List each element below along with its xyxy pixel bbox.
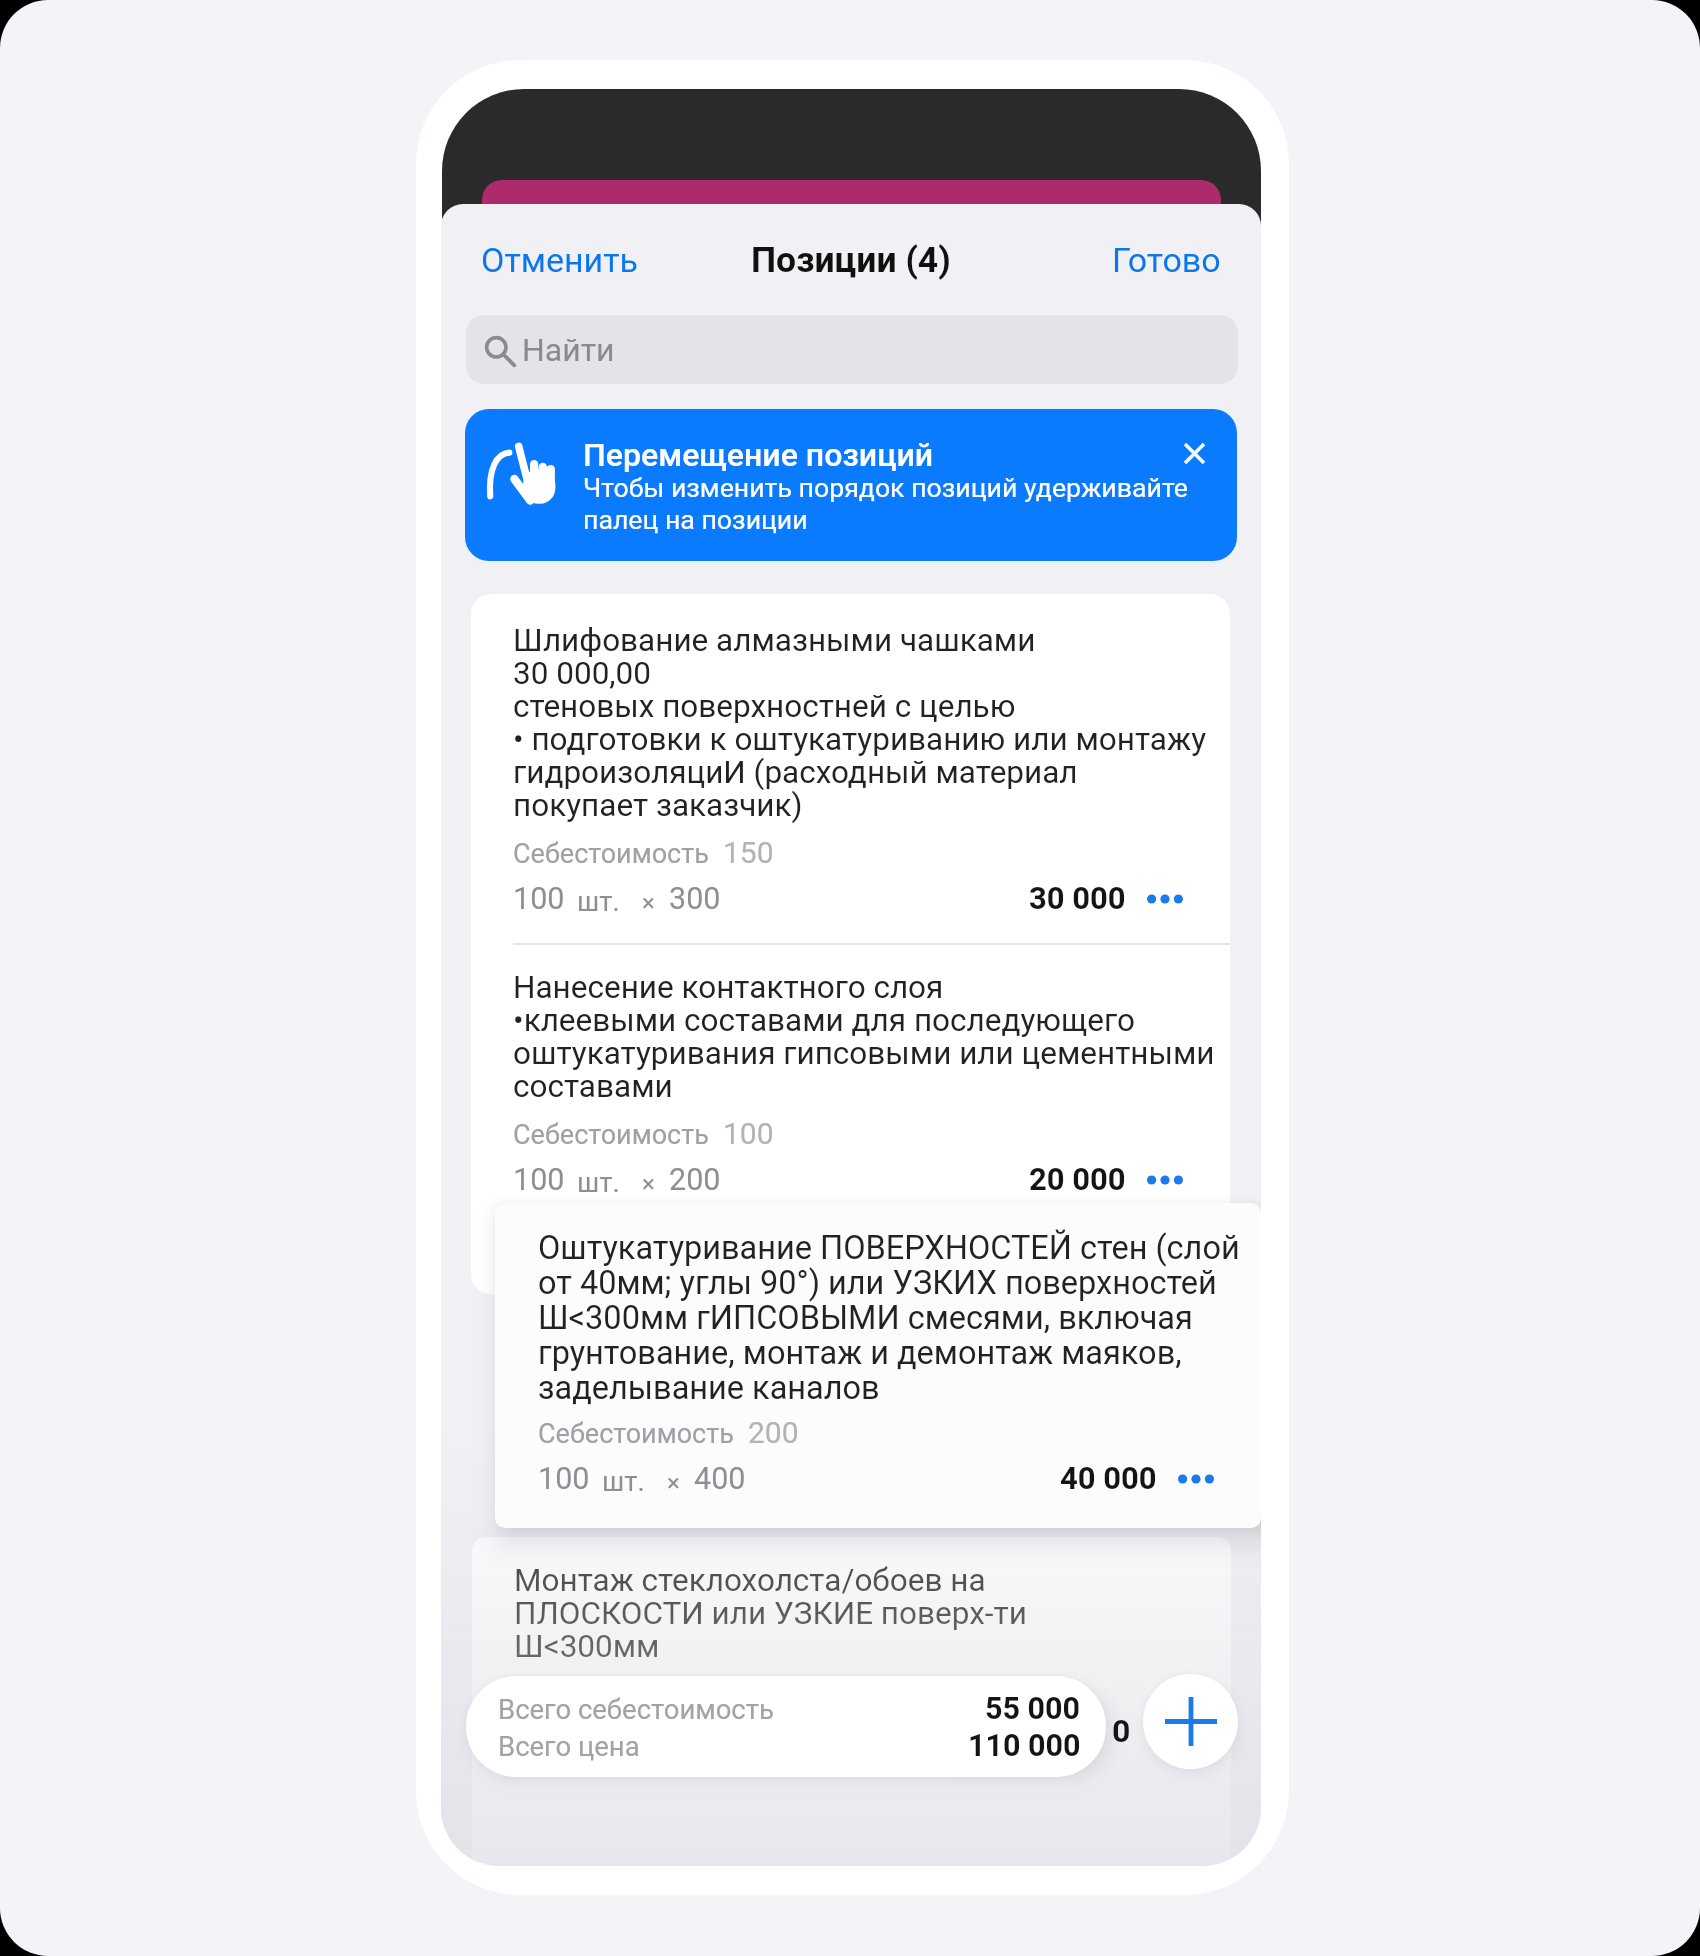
staticText: ×	[642, 889, 655, 917]
button[interactable]: Ещё	[1142, 881, 1188, 917]
button[interactable]: Шлифование алмазными чашками 30 000,00 с…	[471, 594, 1230, 943]
staticText: Отменить	[481, 240, 639, 280]
staticText: Перемещение позиций	[583, 436, 934, 474]
staticText: 20 000	[1029, 1161, 1126, 1198]
staticText: 150	[723, 835, 774, 870]
button[interactable]: Закрыть	[1168, 427, 1220, 479]
staticText: ×	[642, 1170, 655, 1198]
button[interactable]: Найти	[466, 315, 1238, 384]
staticText: Себестоимость	[513, 838, 709, 870]
button[interactable]: Отменить	[461, 226, 659, 294]
button[interactable]: Всего себестоимость	[466, 1676, 1106, 1777]
staticText: 100	[513, 881, 565, 917]
staticText: 200	[669, 1162, 721, 1198]
staticText: Позиции (4)	[751, 239, 951, 281]
button[interactable]: Добавить	[1143, 1674, 1238, 1769]
staticText: 100	[723, 1116, 774, 1151]
staticText: 110 000	[968, 1727, 1081, 1764]
staticText: 55 000	[985, 1690, 1081, 1727]
staticText: Готово	[1112, 240, 1221, 280]
staticText: Всего цена	[498, 1727, 640, 1764]
staticText: 100	[538, 1461, 590, 1497]
button[interactable]: Нанесение контактного слоя •клеевыми сос…	[471, 945, 1230, 1216]
staticText: Шлифование алмазными чашками 30 000,00 с…	[513, 625, 1207, 823]
staticText: Монтаж стеклохолста/обоев на ПЛОСКОСТИ и…	[514, 1565, 1027, 1664]
staticText: 30 000	[1029, 880, 1126, 917]
button[interactable]: Перемещение позиций	[465, 409, 1237, 561]
staticText: Найти	[522, 331, 615, 369]
staticText: шт.	[602, 1465, 645, 1497]
staticText: шт.	[577, 1166, 620, 1198]
staticText: Себестоимость	[513, 1119, 709, 1151]
button[interactable]: Оштукатуривание ПОВЕРХНОСТЕЙ стен (слой …	[495, 1203, 1261, 1528]
staticText: 0	[1112, 1712, 1131, 1750]
staticText: 40 000	[1060, 1460, 1157, 1497]
button[interactable]: Ещё	[1173, 1461, 1219, 1497]
staticText: Себестоимость	[538, 1418, 734, 1450]
staticText: 400	[694, 1461, 746, 1497]
button[interactable]: Монтаж стеклохолста/обоев на ПЛОСКОСТИ и…	[472, 1537, 1231, 1866]
staticText: 200	[748, 1415, 799, 1450]
staticText: Нанесение контактного слоя •клеевыми сос…	[513, 972, 1215, 1104]
staticText: 100	[513, 1162, 565, 1198]
staticText: ×	[667, 1469, 680, 1497]
staticText: шт.	[577, 885, 620, 917]
staticText: Оштукатуривание ПОВЕРХНОСТЕЙ стен (слой …	[538, 1231, 1240, 1406]
button[interactable]: Ещё	[1142, 1162, 1188, 1198]
staticText: Чтобы изменить порядок позиций удерживай…	[583, 472, 1188, 536]
staticText: Всего себестоимость	[498, 1690, 774, 1727]
button[interactable]: Готово	[1092, 226, 1241, 294]
staticText: 300	[669, 881, 721, 917]
